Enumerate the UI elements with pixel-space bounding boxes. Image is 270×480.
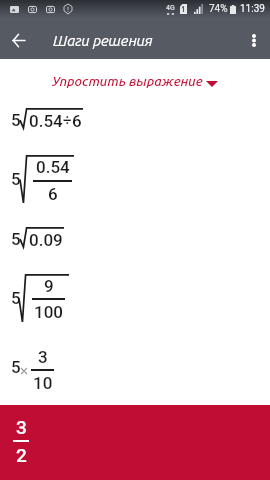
button[interactable]: Back (5, 27, 32, 54)
staticText: ÷ (63, 111, 72, 129)
staticText: 5 (11, 357, 21, 377)
button[interactable]: Упростить выражение (0, 73, 270, 88)
staticText: 100 (34, 302, 63, 322)
button[interactable]: 3 (0, 405, 270, 480)
staticText: 2 (16, 444, 27, 466)
staticText: 3 (38, 347, 48, 367)
staticText: Шаги решения (53, 32, 153, 49)
staticText: 11:39 (240, 3, 265, 15)
staticText: 9 (44, 276, 54, 296)
staticText: 10 (33, 373, 53, 393)
staticText: 5 (11, 288, 21, 308)
staticText: 4G (166, 4, 175, 12)
staticText: 0.54 (29, 111, 63, 131)
staticText: 0.54 (36, 157, 70, 177)
staticText: 0.09 (29, 230, 63, 250)
staticText: 5 (11, 169, 21, 189)
staticText: 6 (72, 111, 82, 131)
staticText: 3 (16, 416, 27, 438)
staticText: 5 (11, 229, 21, 249)
staticText: 74% (209, 3, 228, 15)
staticText: 5 (11, 110, 21, 130)
staticText: Упростить выражение (52, 73, 203, 88)
button[interactable]: More options (240, 27, 267, 54)
staticText: 6 (48, 184, 58, 204)
